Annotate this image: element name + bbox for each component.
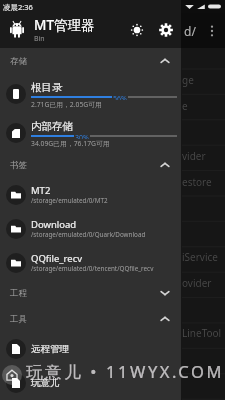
button[interactable]: QQfile_recv <box>0 246 181 280</box>
staticText: vider <box>182 149 206 163</box>
staticText: 内部存储 <box>31 120 73 133</box>
staticText: 30% <box>75 133 89 139</box>
button[interactable]: 玩意儿 <box>0 366 181 400</box>
button[interactable]: 存储 <box>0 48 181 74</box>
staticText: /storage/emulated/0/tencent/QQfile_recv <box>31 264 154 273</box>
button[interactable]: 根目录 <box>0 74 181 113</box>
staticText: 2.71G已用，2.05G可用 <box>31 100 102 109</box>
button[interactable]: Download <box>0 212 181 246</box>
staticText: estore <box>182 175 212 189</box>
staticText: MT2 <box>31 184 51 197</box>
staticText: 凌晨2:36 <box>3 2 33 12</box>
staticText: 存储 <box>10 56 27 67</box>
staticText: QQfile_recv <box>31 252 83 265</box>
button[interactable]: 工程 <box>0 280 181 306</box>
staticText: d/ <box>184 23 196 39</box>
button[interactable]: 工具 <box>0 306 181 332</box>
staticText: 根目录 <box>31 81 63 94</box>
staticText: iService <box>182 250 218 264</box>
staticText: 玩意儿 <box>31 377 60 389</box>
button[interactable]: More options <box>204 23 220 39</box>
staticText: 远程管理 <box>31 343 69 355</box>
button[interactable]: 书签 <box>0 152 181 178</box>
staticText: e <box>182 99 188 113</box>
staticText: ovider <box>182 276 212 290</box>
staticText: 34.09G已用，76.17G可用 <box>31 139 110 148</box>
staticText: 玩意儿 • 11WYX.COM <box>26 360 225 383</box>
staticText: LineTool <box>182 326 222 340</box>
staticText: 56% <box>113 94 127 100</box>
staticText: 工程 <box>10 288 27 299</box>
staticText: /storage/emulated/0/Quark/Download <box>31 230 146 239</box>
staticText: /storage/emulated/0/MT2 <box>31 196 108 205</box>
staticText: 书签 <box>10 160 27 171</box>
button[interactable]: MT2 <box>0 178 181 212</box>
button[interactable]: 远程管理 <box>0 332 181 366</box>
staticText: ge <box>182 73 194 87</box>
staticText: Download <box>31 218 77 231</box>
button[interactable]: Brightness <box>124 17 150 43</box>
staticText: Bin <box>34 34 45 44</box>
button[interactable]: 内部存储 <box>0 113 181 152</box>
staticText: 工具 <box>10 314 27 325</box>
staticText: MT管理器 <box>34 16 95 34</box>
button[interactable]: Settings <box>153 17 179 43</box>
